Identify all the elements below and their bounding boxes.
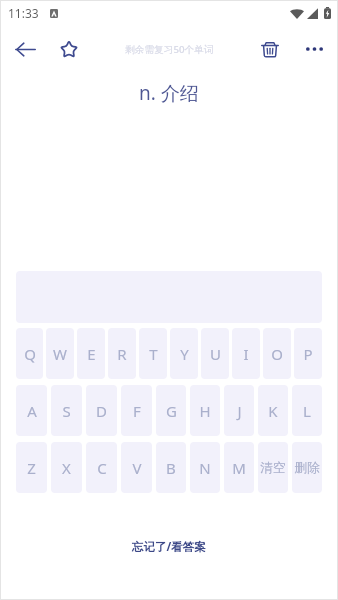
button[interactable]: K — [258, 385, 288, 436]
button[interactable]: E — [77, 328, 105, 379]
button[interactable]: I — [232, 328, 260, 379]
button[interactable]: P — [294, 328, 322, 379]
staticText: V — [132, 458, 142, 478]
staticText: D — [96, 401, 107, 421]
staticText: T — [149, 344, 158, 364]
staticText: H — [199, 401, 211, 421]
button[interactable]: 忘记了/看答案 — [118, 531, 220, 563]
staticText: 删除 — [294, 460, 320, 476]
button[interactable]: V — [121, 442, 152, 493]
button[interactable]: Delete — [248, 27, 292, 71]
staticText: B — [166, 458, 176, 478]
button[interactable]: X — [51, 442, 82, 493]
button[interactable]: Z — [16, 442, 47, 493]
staticText: X — [62, 458, 71, 478]
button[interactable]: Q — [16, 328, 43, 379]
staticText: J — [237, 401, 242, 421]
button[interactable]: J — [224, 385, 254, 436]
button[interactable]: A — [16, 385, 47, 436]
button[interactable]: Y — [170, 328, 198, 379]
button[interactable]: U — [201, 328, 229, 379]
staticText: C — [97, 458, 107, 478]
staticText: Q — [24, 344, 36, 364]
button[interactable]: O — [263, 328, 291, 379]
button[interactable]: 删除 — [292, 442, 322, 493]
staticText: 清空 — [260, 460, 286, 476]
staticText: I — [243, 344, 249, 364]
staticText: P — [303, 344, 313, 364]
staticText: S — [62, 401, 71, 421]
button[interactable]: Back — [3, 27, 47, 71]
button[interactable]: M — [224, 442, 254, 493]
button[interactable]: R — [108, 328, 136, 379]
button[interactable]: B — [156, 442, 186, 493]
button[interactable]: G — [156, 385, 186, 436]
staticText: Z — [27, 458, 36, 478]
staticText: W — [53, 344, 67, 364]
button[interactable]: More options — [292, 27, 336, 71]
button[interactable]: H — [190, 385, 220, 436]
button[interactable]: Favorite — [47, 27, 91, 71]
button[interactable]: T — [139, 328, 167, 379]
button[interactable]: S — [51, 385, 82, 436]
button[interactable]: 清空 — [258, 442, 288, 493]
staticText: F — [133, 401, 141, 421]
staticText: U — [210, 344, 221, 364]
staticText: O — [271, 344, 283, 364]
staticText: L — [303, 401, 311, 421]
staticText: 剩余需复习50个单词 — [125, 43, 214, 56]
staticText: A — [27, 401, 37, 421]
staticText: R — [117, 344, 127, 364]
button[interactable]: N — [190, 442, 220, 493]
staticText: N — [199, 458, 211, 478]
staticText: G — [166, 401, 177, 421]
staticText: Y — [180, 344, 189, 364]
button[interactable]: L — [292, 385, 322, 436]
button[interactable]: W — [46, 328, 74, 379]
staticText: E — [87, 344, 96, 364]
staticText: 忘记了/看答案 — [132, 539, 206, 555]
button[interactable]: D — [86, 385, 117, 436]
button[interactable]: C — [86, 442, 117, 493]
staticText: K — [268, 401, 278, 421]
staticText: M — [232, 458, 246, 478]
staticText: 11:33 — [8, 5, 39, 21]
button[interactable]: F — [121, 385, 152, 436]
staticText: n. 介绍 — [139, 80, 199, 106]
